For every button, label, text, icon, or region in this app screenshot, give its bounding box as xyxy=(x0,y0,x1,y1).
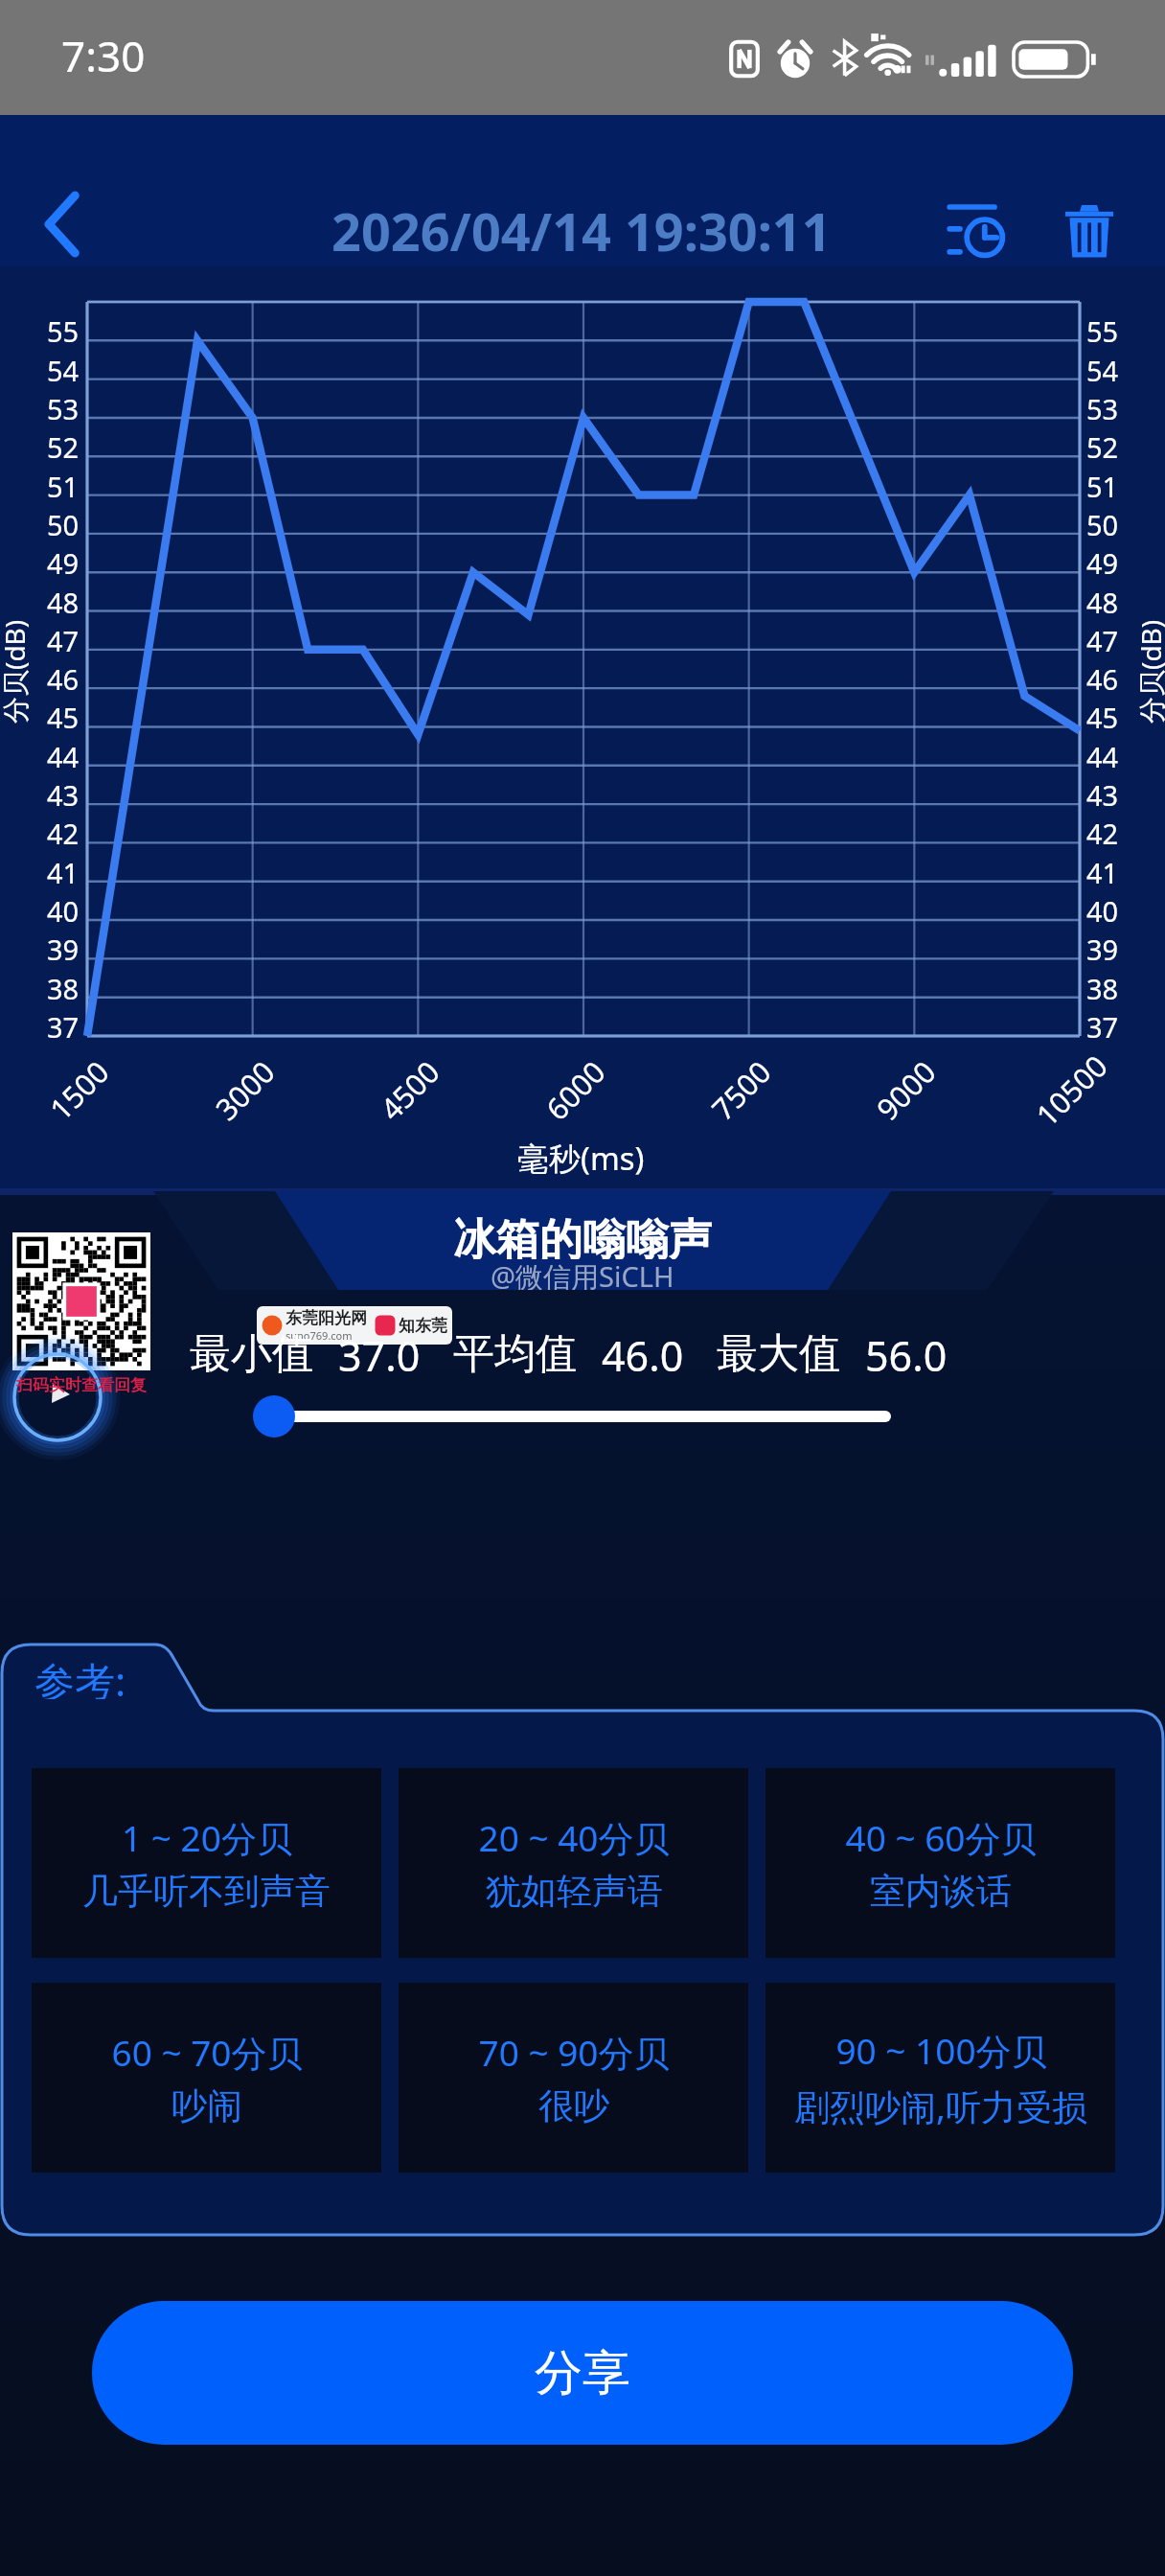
staticText: 49 xyxy=(47,544,80,582)
button[interactable] xyxy=(253,1391,906,1441)
staticText: 2026/04/14 19:30:11 xyxy=(331,195,832,264)
staticText: 38 xyxy=(1086,970,1119,1007)
staticText: 54 xyxy=(47,352,80,389)
staticText: 47 xyxy=(47,622,80,659)
staticText: 最大值 xyxy=(717,1328,840,1380)
staticText: 48 xyxy=(1086,584,1119,621)
staticText: 43 xyxy=(47,776,80,814)
staticText: 45 xyxy=(1086,699,1119,736)
staticText: 45 xyxy=(47,699,80,736)
staticText: 39 xyxy=(47,931,80,968)
staticText: 分贝(dB) xyxy=(0,619,33,724)
staticText: 犹如轻声语 xyxy=(486,1869,663,1914)
staticText: 38 xyxy=(47,970,80,1007)
staticText: 60 ~ 70分贝 xyxy=(111,2028,303,2077)
staticText: 37 xyxy=(1086,1008,1119,1046)
staticText: 7:30 xyxy=(61,27,146,84)
staticText: 40 xyxy=(47,892,80,930)
button[interactable]: 1 ~ 20分贝 xyxy=(32,1768,381,1958)
button[interactable]: History xyxy=(929,182,1025,278)
staticText: 48 xyxy=(47,584,80,621)
staticText: 50 xyxy=(1086,506,1119,543)
staticText: 毫秒(ms) xyxy=(517,1137,645,1180)
staticText: 43 xyxy=(1086,776,1119,814)
staticText: 55 xyxy=(1086,312,1119,350)
staticText: 40 xyxy=(1086,892,1119,930)
staticText: 52 xyxy=(47,428,80,466)
staticText: 7500 xyxy=(703,1052,779,1129)
button[interactable]: 40 ~ 60分贝 xyxy=(765,1768,1115,1958)
staticText: 很吵 xyxy=(538,2083,609,2128)
staticText: 50 xyxy=(47,506,80,543)
staticText: 42 xyxy=(1086,815,1119,852)
staticText: 41 xyxy=(1086,854,1119,891)
staticText: 44 xyxy=(47,738,80,775)
staticText: 1 ~ 20分贝 xyxy=(122,1813,292,1862)
staticText: 46 xyxy=(47,660,80,698)
button[interactable]: Delete xyxy=(1041,182,1137,278)
staticText: 46.0 xyxy=(602,1327,684,1381)
staticText: 分享 xyxy=(535,2343,630,2403)
staticText: 平均值 xyxy=(453,1328,577,1380)
staticText: 知东莞 xyxy=(399,1316,447,1336)
staticText: 52 xyxy=(1086,428,1119,466)
staticText: 东莞阳光网 xyxy=(286,1308,367,1328)
staticText: 53 xyxy=(1086,390,1119,427)
staticText: 39 xyxy=(1086,931,1119,968)
staticText: 53 xyxy=(47,390,80,427)
staticText: 吵闹 xyxy=(171,2083,242,2128)
staticText: 1500 xyxy=(41,1052,117,1129)
staticText: 4500 xyxy=(371,1052,448,1129)
staticText: 9000 xyxy=(867,1052,944,1129)
staticText: 6000 xyxy=(537,1052,613,1129)
staticText: 最小值 xyxy=(190,1328,313,1380)
staticText: 40 ~ 60分贝 xyxy=(845,1813,1037,1862)
staticText: 56.0 xyxy=(865,1327,948,1381)
staticText: 42 xyxy=(47,815,80,852)
staticText: 几乎听不到声音 xyxy=(82,1869,331,1914)
staticText: 54 xyxy=(1086,352,1119,389)
staticText: 55 xyxy=(47,312,80,350)
staticText: 46 xyxy=(1086,660,1119,698)
staticText: 70 ~ 90分贝 xyxy=(478,2028,670,2077)
button[interactable]: Back xyxy=(17,180,105,268)
staticText: 扫码实时查看回复 xyxy=(16,1375,147,1395)
staticText: 44 xyxy=(1086,738,1119,775)
staticText: 剧烈吵闹,听力受损 xyxy=(794,2081,1087,2130)
button[interactable]: 20 ~ 40分贝 xyxy=(399,1768,748,1958)
staticText: 41 xyxy=(47,854,80,891)
button[interactable]: 70 ~ 90分贝 xyxy=(399,1983,748,2173)
staticText: 51 xyxy=(1086,468,1119,505)
staticText: 51 xyxy=(47,468,80,505)
staticText: @微信用SiCLH xyxy=(491,1257,674,1290)
staticText: 冰箱的嗡嗡声 xyxy=(453,1213,712,1259)
staticText: 49 xyxy=(1086,544,1119,582)
staticText: 10500 xyxy=(1027,1046,1116,1135)
staticText: 3000 xyxy=(206,1052,283,1129)
staticText: 20 ~ 40分贝 xyxy=(478,1813,670,1862)
staticText: 37.0 xyxy=(338,1327,421,1381)
staticText: 47 xyxy=(1086,622,1119,659)
staticText: 90 ~ 100分贝 xyxy=(835,2026,1047,2075)
staticText: 分贝(dB) xyxy=(1132,619,1165,724)
button[interactable]: 分享 xyxy=(92,2301,1073,2445)
button[interactable]: 90 ~ 100分贝 xyxy=(765,1983,1115,2173)
staticText: 参考: xyxy=(34,1653,126,1699)
button[interactable]: 60 ~ 70分贝 xyxy=(32,1983,381,2173)
staticText: 室内谈话 xyxy=(870,1869,1012,1914)
staticText: 37 xyxy=(47,1008,80,1046)
staticText: suno769.com xyxy=(286,1328,353,1343)
